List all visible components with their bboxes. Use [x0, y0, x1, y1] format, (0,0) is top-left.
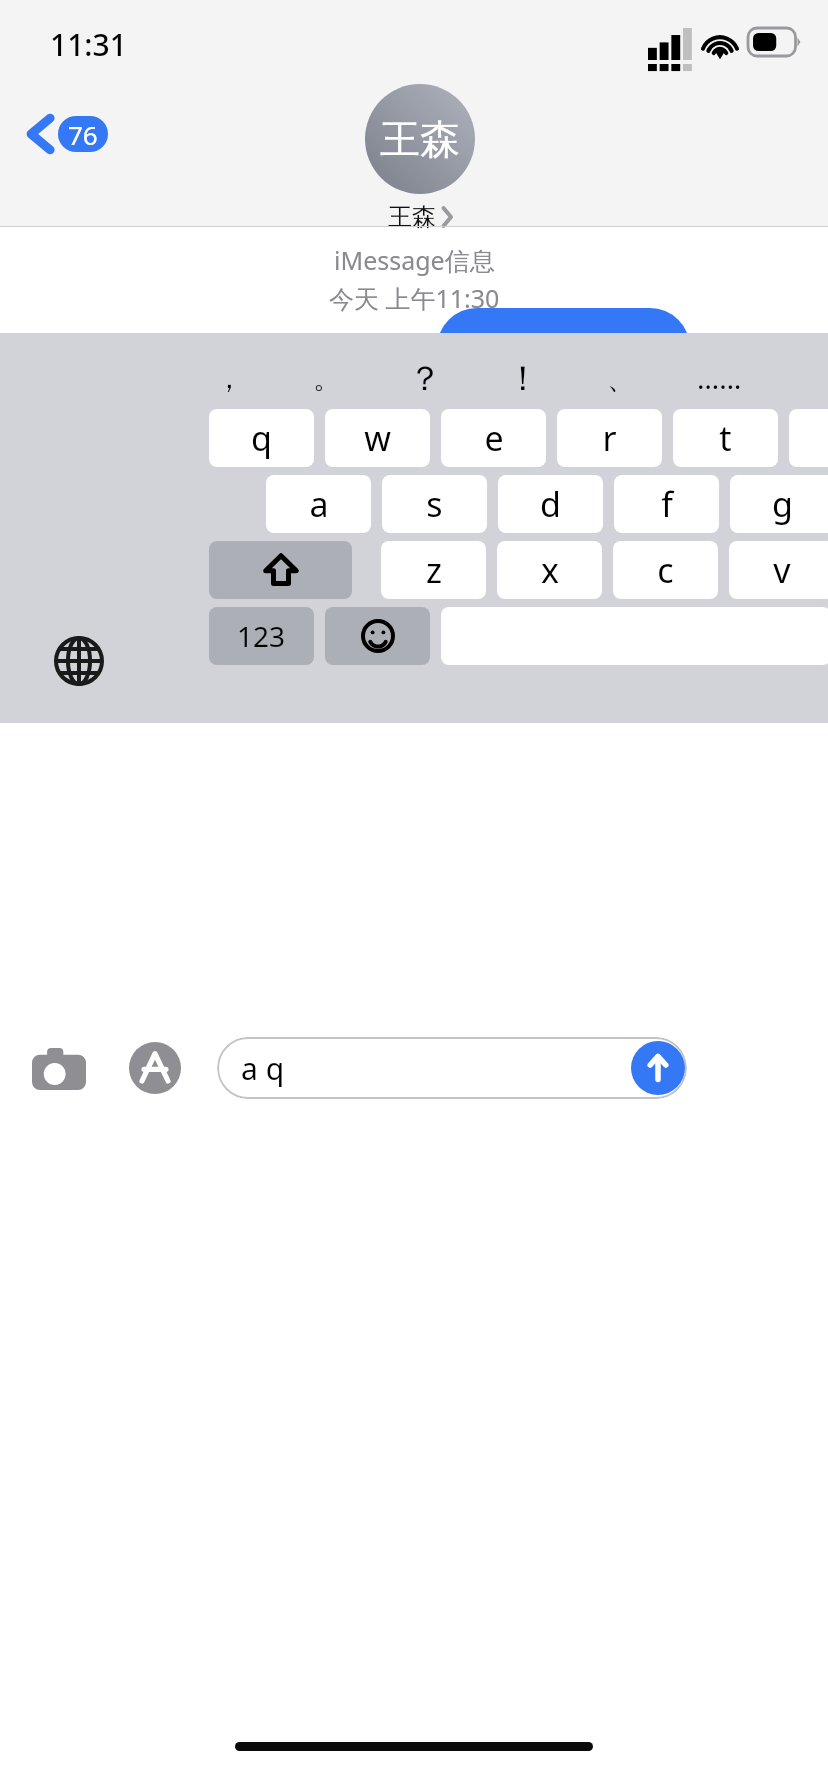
staticText: v — [773, 547, 791, 593]
button[interactable]: 王森 — [330, 84, 510, 232]
staticText: x — [541, 547, 559, 593]
staticText: e — [484, 415, 504, 461]
button[interactable]: ？ — [376, 350, 474, 406]
staticText: 王森 — [380, 114, 460, 164]
staticText: iMessage信息 — [334, 243, 495, 277]
button[interactable]: s — [382, 475, 487, 533]
staticText: …… — [697, 359, 742, 397]
staticText: w — [364, 415, 391, 461]
staticText: a q — [241, 1048, 285, 1089]
button[interactable]: Emoji — [325, 607, 430, 665]
button[interactable]: f — [614, 475, 719, 533]
button[interactable]: Camera — [30, 1040, 88, 1098]
button[interactable]: q — [209, 409, 314, 467]
staticText: 123 — [237, 617, 286, 655]
button[interactable]: a — [266, 475, 371, 533]
staticText: q — [251, 415, 272, 461]
staticText: c — [657, 547, 674, 593]
staticText: 76 — [68, 117, 98, 152]
staticText: 王森 — [388, 202, 436, 232]
button[interactable]: ， — [180, 350, 278, 406]
button[interactable]: 、 — [572, 350, 670, 406]
staticText: a — [309, 481, 329, 527]
staticText: ？ — [408, 357, 442, 400]
button[interactable]: …… — [670, 350, 768, 406]
button[interactable]: Switch keyboard — [50, 632, 108, 690]
button[interactable]: t — [673, 409, 778, 467]
staticText: 。 — [313, 361, 341, 396]
staticText: t — [719, 415, 732, 461]
button[interactable]: Apps — [125, 1038, 185, 1098]
button[interactable]: z — [381, 541, 486, 599]
button[interactable]: v — [729, 541, 828, 599]
button[interactable]: c — [613, 541, 718, 599]
button[interactable]: Back, 76 unread — [22, 108, 114, 160]
button[interactable]: d — [498, 475, 603, 533]
staticText: f — [661, 481, 673, 527]
staticText: r — [602, 415, 617, 461]
staticText: ， — [215, 361, 243, 396]
staticText: 今天 上午11:30 — [329, 281, 500, 315]
staticText: ！ — [506, 357, 540, 400]
button[interactable]: r — [557, 409, 662, 467]
staticText: z — [426, 547, 442, 593]
button[interactable]: a q — [217, 1037, 687, 1099]
button[interactable]: 。 — [278, 350, 376, 406]
button[interactable]: e — [441, 409, 546, 467]
staticText: s — [426, 481, 443, 527]
button[interactable]: Send — [631, 1041, 685, 1095]
button[interactable]: y — [789, 409, 828, 467]
staticText: 136-6969-9687 — [456, 332, 672, 374]
button[interactable]: Shift — [209, 541, 352, 599]
button[interactable]: 136-6969-9687 — [437, 308, 690, 398]
staticText: 、 — [607, 361, 635, 396]
button[interactable]: g — [730, 475, 828, 533]
button[interactable]: x — [497, 541, 602, 599]
button[interactable]: w — [325, 409, 430, 467]
staticText: g — [772, 481, 793, 527]
button[interactable]: ！ — [474, 350, 572, 406]
staticText: d — [540, 481, 561, 527]
staticText: 11:31 — [50, 24, 127, 65]
button[interactable]: 123 — [209, 607, 314, 665]
